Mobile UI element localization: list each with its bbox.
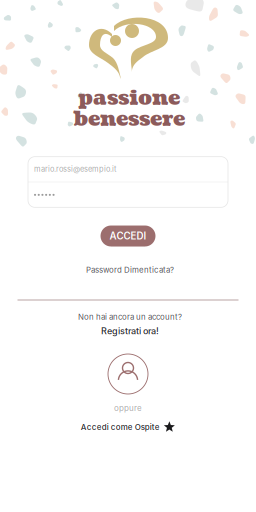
button[interactable]: ACCEDI — [100, 225, 155, 246]
staticText: ACCEDI — [109, 230, 146, 242]
staticText: benessere — [73, 104, 185, 133]
staticText: Registrati ora! — [101, 325, 159, 336]
button[interactable]: Accedi come Ospite — [81, 419, 175, 435]
staticText: mario.rossi@esempio.it — [34, 165, 116, 174]
staticText: passione — [78, 83, 180, 112]
button[interactable]: Password Dimenticata? — [86, 263, 174, 277]
staticText: oppure — [114, 403, 142, 413]
button[interactable]: Registrati ora! — [101, 324, 159, 338]
button[interactable]: Profilo — [107, 353, 149, 395]
staticText: Accedi come Ospite — [81, 422, 160, 432]
staticText: Password Dimenticata? — [86, 265, 174, 275]
staticText: Non hai ancora un account? — [78, 312, 182, 322]
